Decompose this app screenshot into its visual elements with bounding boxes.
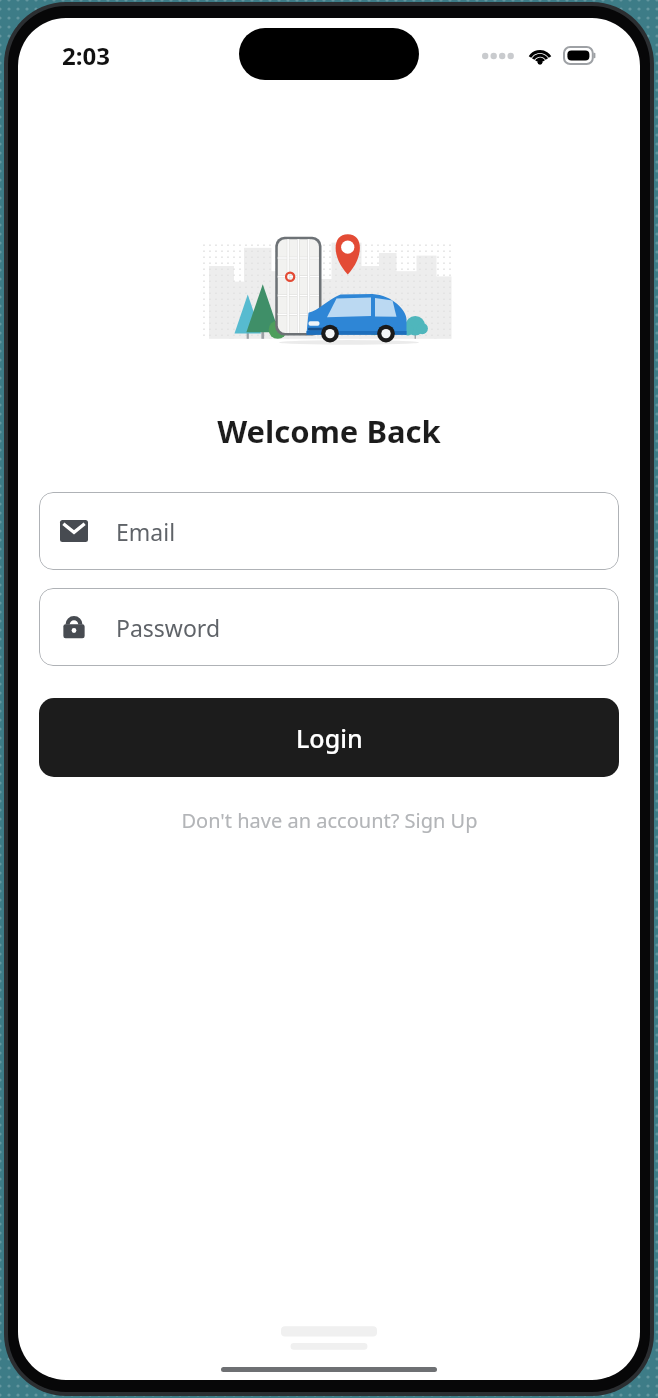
staticText: Don't have an account? Sign Up	[181, 807, 478, 834]
button[interactable]: Password	[39, 588, 619, 666]
button[interactable]: Don't have an account? Sign Up	[18, 807, 640, 834]
staticText: Password	[116, 612, 221, 643]
staticText: Login	[296, 721, 363, 755]
staticText: Email	[116, 516, 176, 547]
button[interactable]: Email	[39, 492, 619, 570]
staticText: Welcome Back	[18, 410, 640, 452]
staticText: 2:03	[62, 39, 110, 72]
button[interactable]: Login	[39, 698, 619, 777]
